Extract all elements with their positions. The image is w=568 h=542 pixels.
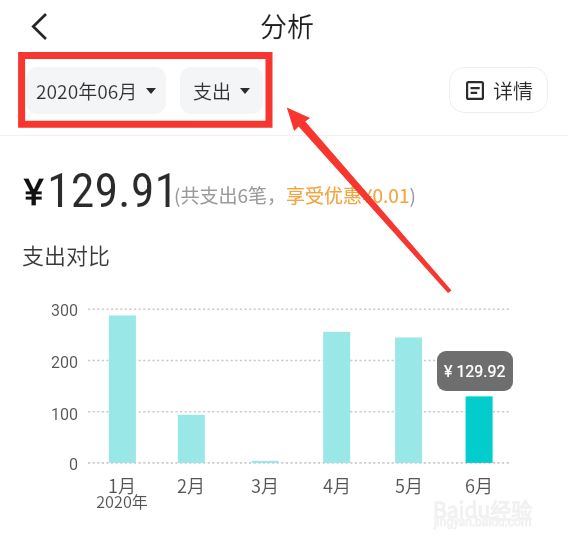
- staticText: 5月: [379, 472, 439, 498]
- staticText: 6月: [449, 472, 509, 498]
- button[interactable]: Back: [13, 1, 63, 51]
- staticText: ¥: [24, 171, 44, 214]
- button[interactable]: 支出: [180, 67, 263, 114]
- staticText: 详情: [493, 76, 533, 105]
- button[interactable]: 2020年06月: [26, 67, 166, 114]
- staticText: 1月: [92, 472, 152, 498]
- staticText: ¥ 129.92: [444, 362, 506, 381]
- staticText: 200: [0, 353, 78, 372]
- staticText: 分析: [260, 6, 314, 45]
- button[interactable]: 详情: [449, 67, 548, 113]
- staticText: 2020年: [82, 489, 162, 512]
- staticText: 支出对比: [22, 238, 111, 270]
- staticText: jingyan.baidu.com: [434, 515, 532, 529]
- staticText: 3月: [235, 472, 295, 498]
- staticText: 100: [0, 405, 78, 424]
- staticText: 支出: [193, 77, 232, 105]
- staticText: 2月: [161, 472, 221, 498]
- staticText: 300: [0, 301, 78, 320]
- staticText: 2020年06月: [36, 77, 138, 105]
- staticText: 0: [0, 455, 78, 474]
- staticText: (共支出6笔，享受优惠¥0.01): [174, 181, 416, 209]
- staticText: 4月: [307, 472, 367, 498]
- staticText: Baidu经验: [433, 494, 533, 524]
- staticText: 129.91: [47, 162, 179, 218]
